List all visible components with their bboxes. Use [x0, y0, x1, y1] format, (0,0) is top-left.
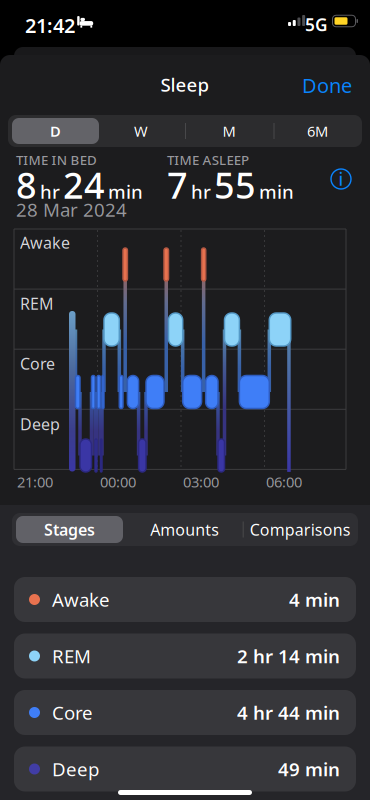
staticText: 5G: [305, 13, 328, 36]
staticText: Deep: [20, 413, 60, 435]
staticText: TIME IN BED: [16, 151, 97, 169]
staticText: 21:42: [25, 12, 75, 39]
button[interactable]: Done: [292, 72, 352, 99]
staticText: 8: [16, 161, 37, 209]
staticText: hr: [191, 179, 211, 204]
staticText: Awake: [20, 232, 70, 253]
staticText: 4 min: [289, 587, 340, 612]
staticText: 06:00: [266, 472, 302, 491]
staticText: min: [108, 179, 143, 204]
staticText: 2 hr 14 min: [237, 644, 340, 668]
staticText: Stages: [44, 519, 95, 540]
staticText: Sleep: [160, 72, 209, 97]
button[interactable]: D: [12, 118, 99, 144]
staticText: TIME ASLEEP: [167, 151, 249, 169]
button[interactable]: Stages: [16, 516, 123, 543]
staticText: M: [222, 121, 235, 141]
staticText: D: [50, 121, 61, 141]
staticText: W: [134, 121, 148, 141]
staticText: i: [338, 167, 343, 190]
staticText: min: [259, 179, 294, 204]
staticText: Comparisons: [250, 519, 351, 540]
staticText: 55: [214, 161, 256, 209]
staticText: Deep: [52, 757, 99, 781]
staticText: 49 min: [278, 757, 340, 781]
staticText: 6M: [307, 121, 328, 141]
button[interactable]: 6M: [273, 115, 361, 147]
button[interactable]: Amounts: [127, 513, 242, 546]
staticText: 00:00: [100, 472, 136, 491]
staticText: Awake: [52, 587, 110, 612]
staticText: Core: [52, 700, 93, 725]
staticText: Amounts: [150, 519, 219, 540]
staticText: 21:00: [17, 472, 53, 491]
staticText: 24: [63, 161, 105, 209]
button[interactable]: M: [185, 115, 273, 147]
staticText: 4 hr 44 min: [237, 700, 340, 725]
button[interactable]: Comparisons: [243, 513, 358, 546]
staticText: REM: [52, 644, 91, 668]
button[interactable]: More info: [330, 168, 351, 189]
staticText: Done: [302, 72, 352, 99]
button[interactable]: W: [97, 115, 185, 147]
staticText: 28 Mar 2024: [16, 197, 127, 222]
staticText: hr: [40, 179, 60, 204]
staticText: Core: [20, 353, 55, 374]
staticText: 7: [167, 161, 188, 209]
staticText: 03:00: [183, 472, 219, 491]
staticText: REM: [20, 293, 54, 314]
